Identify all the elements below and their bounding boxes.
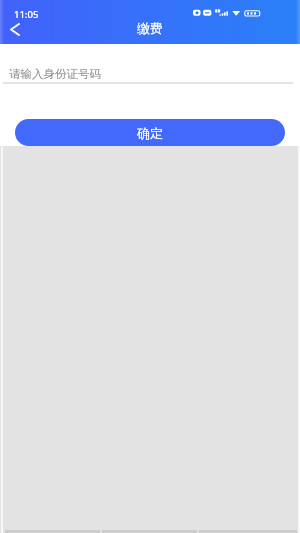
staticText: 缴费 bbox=[137, 20, 163, 36]
staticText: 11:05 bbox=[14, 8, 39, 21]
staticText: 请输入身份证号码 bbox=[9, 67, 101, 81]
button[interactable]: 确定 bbox=[15, 119, 285, 146]
button[interactable]: 请输入身份证号码 bbox=[0, 44, 300, 85]
staticText: 确定 bbox=[137, 125, 163, 141]
button[interactable]: Back bbox=[3, 17, 27, 41]
